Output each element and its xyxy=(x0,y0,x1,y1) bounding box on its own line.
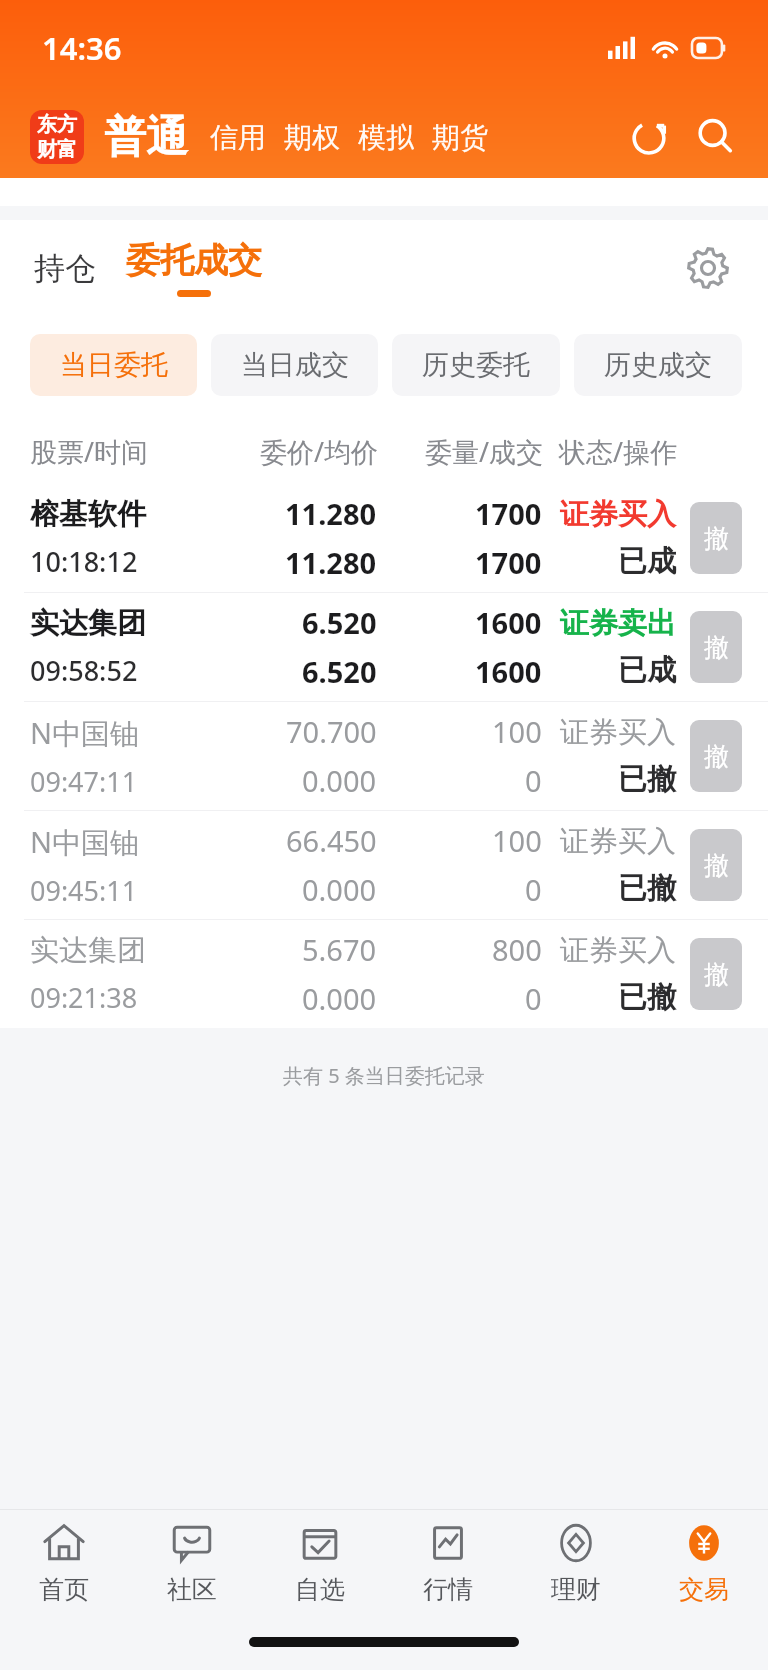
staticText: 持仓 xyxy=(34,249,96,288)
staticText: 已成 xyxy=(618,543,676,580)
staticText: 70.700 xyxy=(286,712,377,751)
staticText: 撤 xyxy=(704,523,729,554)
staticText: 1600 xyxy=(475,652,542,691)
button[interactable]: 委托成交 xyxy=(126,220,262,316)
staticText: 历史成交 xyxy=(604,348,712,382)
button[interactable]: Settings xyxy=(678,238,738,298)
button[interactable]: 榕基软件 xyxy=(0,484,768,592)
staticText: 100 xyxy=(492,712,542,751)
button[interactable]: 理财 xyxy=(512,1510,640,1614)
staticText: 委价/均价 xyxy=(260,433,379,470)
button[interactable]: 历史委托 xyxy=(392,334,560,396)
staticText: 1700 xyxy=(475,494,542,533)
staticText: 撤 xyxy=(704,632,729,663)
button[interactable]: N中国铀 xyxy=(0,811,768,919)
staticText: 自选 xyxy=(295,1574,345,1605)
button[interactable]: N中国铀 xyxy=(0,702,768,810)
button[interactable]: 自选 xyxy=(256,1510,384,1614)
staticText: 实达集团 xyxy=(30,605,146,642)
staticText: 800 xyxy=(492,930,542,969)
button[interactable]: 当日成交 xyxy=(211,334,378,396)
button[interactable]: 实达集团 xyxy=(0,920,768,1028)
staticText: 行情 xyxy=(423,1574,473,1605)
staticText: 期货 xyxy=(432,120,488,155)
button[interactable]: 社区 xyxy=(128,1510,256,1614)
button[interactable]: 东方 xyxy=(30,110,84,164)
staticText: 共有 5 条当日委托记录 xyxy=(283,1062,485,1089)
staticText: 100 xyxy=(492,821,542,860)
staticText: 信用 xyxy=(210,120,266,155)
button[interactable]: 模拟 xyxy=(358,120,414,155)
staticText: 0.000 xyxy=(302,761,377,800)
button[interactable]: 撤 xyxy=(690,502,742,574)
staticText: 普通 xyxy=(104,111,188,164)
staticText: 已撤 xyxy=(618,979,676,1016)
staticText: 交易 xyxy=(679,1574,729,1605)
staticText: N中国铀 xyxy=(30,713,140,753)
button[interactable]: 历史成交 xyxy=(574,334,742,396)
button[interactable]: 实达集团 xyxy=(0,593,768,701)
staticText: 撤 xyxy=(704,741,729,772)
staticText: 当日成交 xyxy=(241,348,349,382)
button[interactable]: 撤 xyxy=(690,611,742,683)
staticText: 撤 xyxy=(704,959,729,990)
staticText: 0 xyxy=(525,870,542,909)
button[interactable]: 期权 xyxy=(284,120,340,155)
staticText: 历史委托 xyxy=(422,348,530,382)
button[interactable]: 当日委托 xyxy=(30,334,197,396)
button[interactable]: 撤 xyxy=(690,720,742,792)
staticText: N中国铀 xyxy=(30,822,140,862)
staticText: 证券卖出 xyxy=(560,605,676,642)
staticText: 状态/操作 xyxy=(559,433,678,470)
staticText: 1600 xyxy=(475,603,542,642)
staticText: 证券买入 xyxy=(560,496,676,533)
staticText: 委托成交 xyxy=(126,239,262,282)
staticText: 09:58:52 xyxy=(30,652,138,689)
button[interactable]: 持仓 xyxy=(34,220,96,316)
staticText: 当日委托 xyxy=(60,348,168,382)
staticText: 14:36 xyxy=(42,27,122,69)
staticText: 委量/成交 xyxy=(425,433,544,470)
staticText: 09:21:38 xyxy=(30,979,138,1016)
staticText: 证券买入 xyxy=(560,932,676,969)
staticText: 0.000 xyxy=(302,870,377,909)
staticText: 已成 xyxy=(618,652,676,689)
staticText: 66.450 xyxy=(286,821,377,860)
staticText: 股票/时间 xyxy=(30,433,149,470)
button[interactable]: 撤 xyxy=(690,829,742,901)
staticText: 模拟 xyxy=(358,120,414,155)
staticText: 证券买入 xyxy=(560,823,676,860)
staticText: 财富 xyxy=(37,137,77,162)
button[interactable]: 首页 xyxy=(0,1510,128,1614)
staticText: 6.520 xyxy=(302,652,377,691)
staticText: 东方 xyxy=(37,112,77,137)
button[interactable]: 交易 xyxy=(640,1510,768,1614)
staticText: 6.520 xyxy=(302,603,377,642)
staticText: 证券买入 xyxy=(560,714,676,751)
staticText: 11.280 xyxy=(285,543,377,582)
staticText: 已撤 xyxy=(618,761,676,798)
staticText: 实达集团 xyxy=(30,932,146,969)
button[interactable]: 普通 xyxy=(104,111,188,164)
button[interactable]: 行情 xyxy=(384,1510,512,1614)
staticText: 理财 xyxy=(551,1574,601,1605)
button[interactable]: Search xyxy=(688,110,742,164)
staticText: 0.000 xyxy=(302,979,377,1018)
staticText: 期权 xyxy=(284,120,340,155)
staticText: 5.670 xyxy=(302,930,377,969)
button[interactable]: Refresh xyxy=(622,110,676,164)
button[interactable]: 信用 xyxy=(210,120,266,155)
staticText: 社区 xyxy=(167,1574,217,1605)
staticText: 0 xyxy=(525,761,542,800)
staticText: 0 xyxy=(525,979,542,1018)
button[interactable]: 撤 xyxy=(690,938,742,1010)
staticText: 撤 xyxy=(704,850,729,881)
staticText: 榕基软件 xyxy=(30,496,146,533)
button[interactable]: 期货 xyxy=(432,120,488,155)
staticText: 首页 xyxy=(39,1574,89,1605)
staticText: 1700 xyxy=(475,543,542,582)
staticText: 已撤 xyxy=(618,870,676,907)
staticText: 11.280 xyxy=(285,494,377,533)
staticText: 09:45:11 xyxy=(30,872,138,909)
staticText: 10:18:12 xyxy=(30,543,138,580)
